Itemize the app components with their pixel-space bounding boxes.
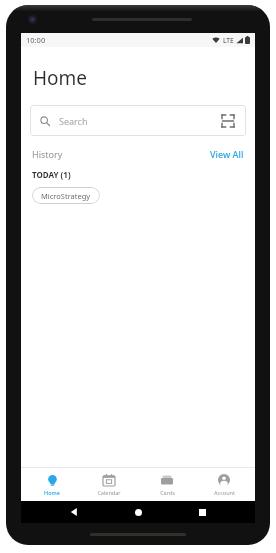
- staticText: Calendar: [97, 489, 121, 496]
- button[interactable]: Account: [197, 470, 251, 499]
- staticText: Home: [33, 65, 88, 91]
- staticText: Home: [44, 489, 60, 496]
- staticText: TODAY (1): [32, 169, 71, 180]
- button[interactable]: Search: [30, 105, 246, 136]
- staticText: Cards: [160, 489, 175, 496]
- button[interactable]: Home: [127, 501, 149, 523]
- staticText: Account: [214, 489, 235, 496]
- staticText: View All: [210, 148, 244, 160]
- staticText: History: [32, 148, 63, 160]
- staticText: MicroStrategy: [41, 191, 91, 201]
- button[interactable]: Recent apps: [191, 501, 213, 523]
- staticText: LTE: [223, 36, 234, 45]
- button[interactable]: View All: [210, 148, 244, 160]
- button[interactable]: Calendar: [82, 470, 136, 499]
- staticText: 10:00: [26, 35, 46, 45]
- staticText: Search: [59, 115, 88, 127]
- button[interactable]: Cards: [140, 470, 194, 499]
- button[interactable]: MicroStrategy: [32, 187, 100, 204]
- button[interactable]: Scan code: [220, 113, 236, 129]
- button[interactable]: Back: [63, 501, 85, 523]
- button[interactable]: Home: [25, 470, 79, 499]
